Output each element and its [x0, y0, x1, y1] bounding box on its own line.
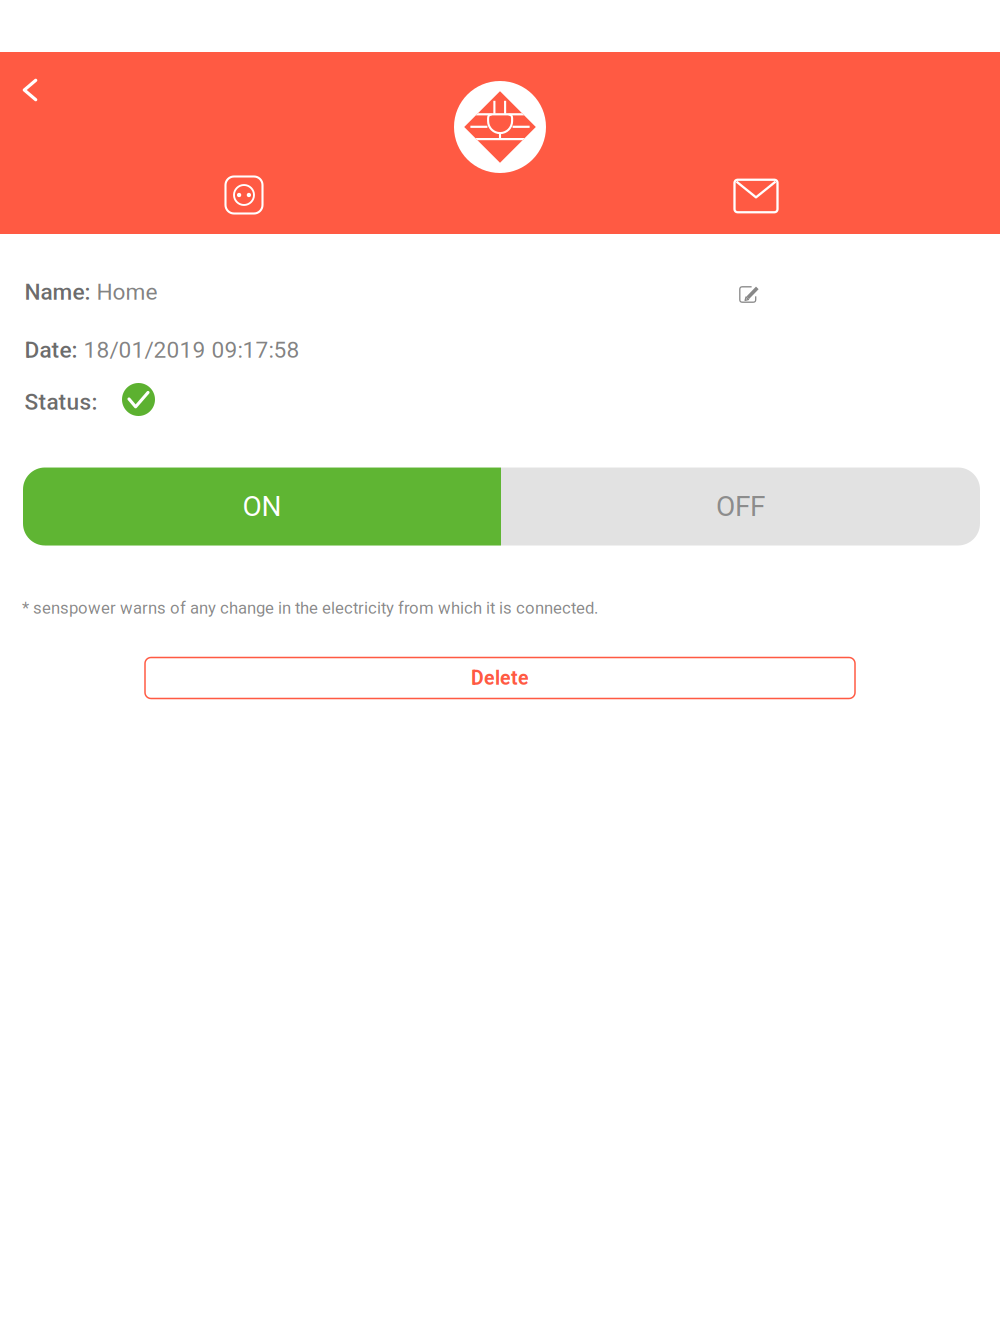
staticText: Status:: [24, 389, 97, 415]
button[interactable]: Back: [0, 55, 66, 125]
button[interactable]: ON: [23, 467, 501, 545]
staticText: OFF: [716, 490, 765, 523]
button[interactable]: Edit name: [714, 266, 784, 322]
staticText: 18/01/2019 09:17:58: [83, 337, 299, 363]
staticText: * senspower warns of any change in the e…: [22, 598, 598, 618]
staticText: Name:: [24, 279, 96, 305]
button[interactable]: Messages: [723, 165, 789, 227]
staticText: Delete: [471, 667, 529, 689]
button[interactable]: OFF: [501, 467, 980, 545]
staticText: Date:: [24, 337, 83, 363]
button[interactable]: Sockets: [211, 164, 277, 226]
staticText: Home: [96, 279, 157, 305]
staticText: ON: [242, 490, 281, 523]
button[interactable]: Delete: [145, 657, 855, 698]
